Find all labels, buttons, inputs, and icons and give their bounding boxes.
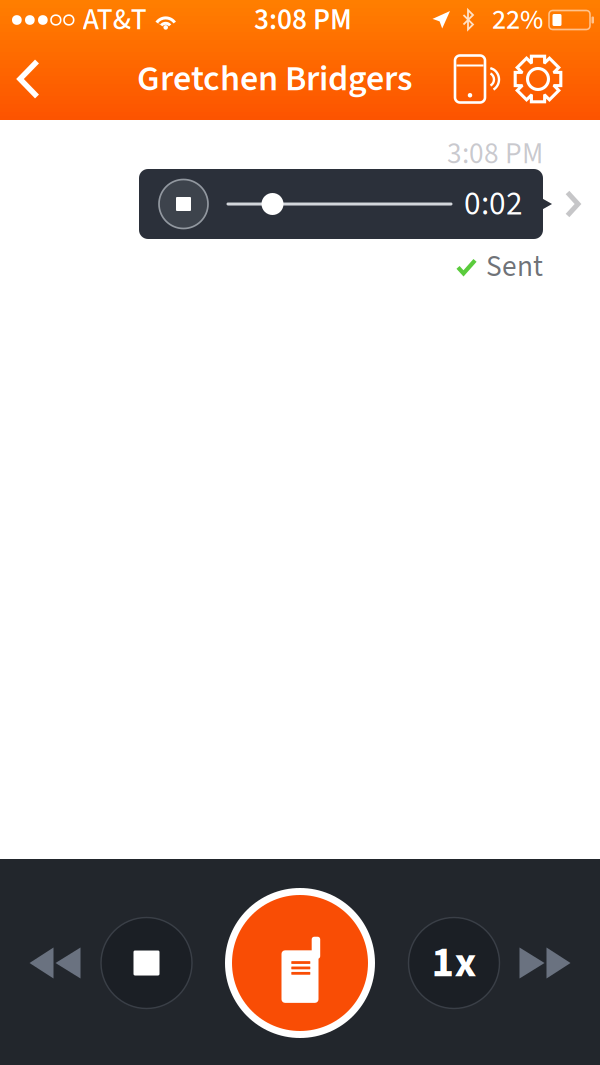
button[interactable]: Settings (509, 40, 567, 118)
button[interactable]: Playback speed (408, 917, 499, 1008)
button[interactable]: 0:02 (139, 169, 543, 239)
staticText: AT&T (83, 0, 147, 41)
button[interactable]: Stop (101, 917, 192, 1008)
staticText: 22% (492, 0, 543, 40)
button[interactable]: Rewind (19, 913, 91, 1013)
button[interactable]: Push to talk (224, 887, 376, 1039)
staticText: Gretchen Bridgers (137, 53, 413, 105)
staticText: 3:08 PM (447, 133, 543, 175)
staticText: 3:08 PM (254, 0, 352, 41)
staticText: Sent (486, 246, 543, 288)
staticText: 0:02 (464, 180, 523, 228)
button[interactable]: Fast forward (509, 913, 581, 1013)
staticText: 1x (431, 933, 476, 993)
button[interactable]: Details (552, 169, 600, 239)
button[interactable]: Back (0, 40, 60, 118)
button[interactable]: Speaker (431, 40, 509, 118)
